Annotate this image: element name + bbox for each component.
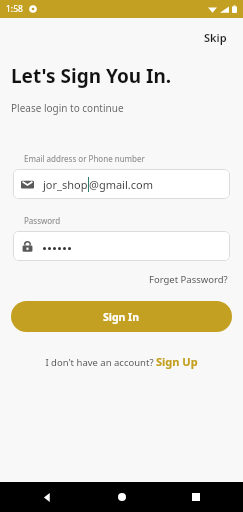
staticText: Email address or Phone number bbox=[24, 153, 145, 164]
button[interactable]: Back bbox=[34, 484, 60, 510]
button[interactable]: Sign In bbox=[11, 301, 232, 332]
staticText: I don't have an account? Sign Up bbox=[45, 354, 198, 369]
button[interactable]: Home bbox=[109, 484, 135, 510]
staticText: Sign In bbox=[103, 310, 140, 324]
button[interactable]: jor_shop bbox=[13, 169, 230, 199]
staticText: Let's Sign You In. bbox=[11, 63, 172, 89]
staticText: Password bbox=[24, 215, 61, 226]
staticText: 1:58 bbox=[6, 3, 23, 15]
button[interactable] bbox=[13, 231, 230, 261]
staticText: Please login to continue bbox=[11, 101, 124, 115]
staticText: Forget Password? bbox=[149, 273, 228, 286]
button[interactable]: Skip bbox=[200, 28, 231, 47]
staticText: jor_shop bbox=[43, 177, 88, 192]
button[interactable]: I don't have an account? Sign Up bbox=[41, 352, 202, 371]
staticText: Skip bbox=[204, 30, 227, 45]
staticText: @gmail.com bbox=[89, 177, 153, 192]
button[interactable]: Forget Password? bbox=[147, 271, 230, 288]
button[interactable]: Recent apps bbox=[183, 484, 209, 510]
